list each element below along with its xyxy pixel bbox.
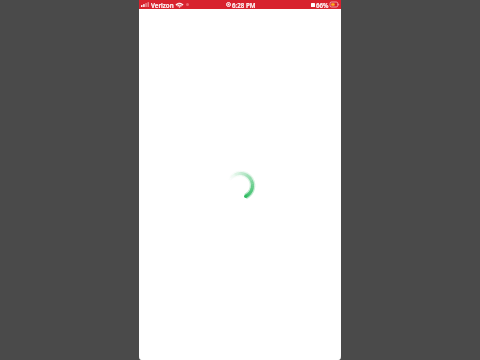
staticText: Verizon xyxy=(151,1,174,9)
staticText: 66% xyxy=(316,1,329,9)
button[interactable]: Status bar xyxy=(139,0,341,9)
other: Wi-Fi xyxy=(175,2,184,8)
other: Alarm xyxy=(311,3,315,7)
other: Location in use xyxy=(226,2,231,7)
staticText: 6:28 PM xyxy=(232,1,256,9)
other: Battery 66 percent xyxy=(330,2,339,7)
other: Cellular signal xyxy=(141,2,149,7)
other: Loading xyxy=(227,172,254,199)
